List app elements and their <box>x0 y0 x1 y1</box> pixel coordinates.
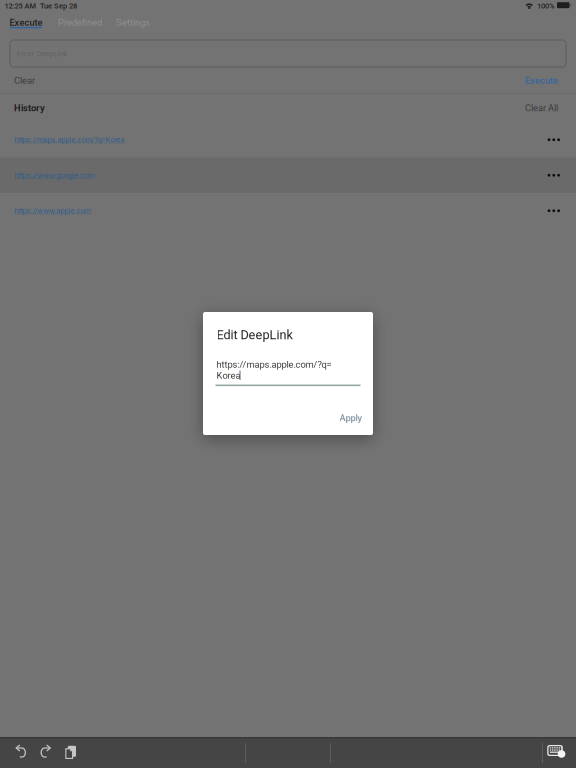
button[interactable]: Predefined <box>50 13 110 32</box>
button[interactable]: https://www.apple.com <box>0 193 576 228</box>
button[interactable]: https://maps.apple.com/?q=Korea <box>0 122 576 157</box>
staticText: Enter DeepLink <box>16 49 67 58</box>
button[interactable]: Execute <box>511 68 576 93</box>
staticText: Execute <box>9 17 42 28</box>
button[interactable]: Apply <box>324 403 377 434</box>
staticText: Execute <box>525 75 558 86</box>
staticText: 12:25 AM <box>4 2 36 10</box>
button[interactable]: Clear <box>0 68 49 93</box>
staticText: Clear All <box>525 102 558 113</box>
staticText: Edit DeepLink <box>216 328 292 342</box>
button[interactable]: Clear All <box>511 94 576 122</box>
staticText: Clear <box>14 75 35 86</box>
button[interactable]: Paste <box>56 737 84 768</box>
staticText: History <box>14 102 45 113</box>
button[interactable]: Execute <box>0 13 52 32</box>
staticText: 100% <box>537 2 554 10</box>
staticText: https://maps.apple.com/?q= <box>216 359 331 370</box>
staticText: Predefined <box>58 17 102 28</box>
button[interactable]: Hide Keyboard <box>539 735 571 766</box>
button[interactable]: Settings <box>107 13 159 32</box>
staticText: https://www.google.com <box>14 171 94 180</box>
staticText: Settings <box>116 17 150 28</box>
button[interactable]: Undo <box>6 736 34 767</box>
staticText: Tue Sep 28 <box>40 2 77 10</box>
staticText: https://maps.apple.com/?q=Korea <box>14 135 124 144</box>
staticText: Apply <box>339 412 362 423</box>
staticText: Korea <box>216 370 240 381</box>
staticText: https://www.apple.com <box>14 206 90 215</box>
button[interactable]: https://www.google.com <box>0 157 576 193</box>
button[interactable]: Redo <box>32 736 60 767</box>
